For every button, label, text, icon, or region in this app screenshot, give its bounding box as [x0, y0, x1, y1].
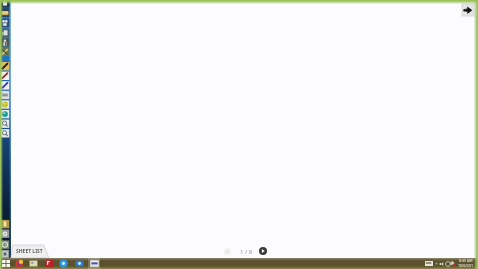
button[interactable]: SHEET LIST [11, 245, 49, 258]
button[interactable]: Network [450, 261, 456, 267]
button[interactable]: Taskbar app 2 [27, 258, 39, 269]
button[interactable]: Input language [425, 261, 433, 266]
staticText: 1 / 8 [240, 248, 253, 256]
button[interactable]: Start [0, 258, 12, 269]
button[interactable]: Tool palette [0, 0, 11, 269]
button[interactable]: Taskbar app 1 [13, 258, 25, 269]
staticText: 8:35 AM [459, 258, 473, 263]
button[interactable]: Show hidden icons [435, 262, 438, 265]
button[interactable]: Taskbar app 5 [73, 258, 85, 269]
button[interactable]: Taskbar app 6 [88, 258, 100, 269]
button[interactable]: Taskbar app 3 [43, 258, 55, 269]
staticText: 10/6/2015 [458, 263, 473, 269]
button[interactable]: Clock [458, 258, 473, 269]
button[interactable]: Next page [259, 247, 267, 255]
button[interactable]: Next slide [462, 4, 474, 16]
staticText: SHEET LIST [16, 248, 43, 255]
button[interactable]: Previous page [224, 248, 231, 255]
button[interactable]: Speakers [439, 261, 445, 267]
button[interactable]: Taskbar app 4 [57, 258, 69, 269]
button[interactable]: Action center [445, 261, 451, 267]
